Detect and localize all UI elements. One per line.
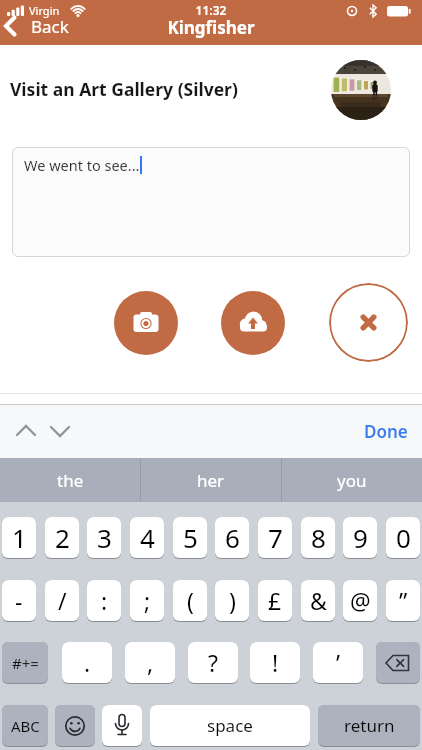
staticText: 4 bbox=[140, 520, 155, 555]
staticText: £ bbox=[268, 585, 282, 616]
button[interactable] bbox=[331, 60, 391, 120]
button[interactable]: ! bbox=[250, 642, 300, 684]
button[interactable] bbox=[221, 291, 285, 355]
button[interactable]: £ bbox=[258, 580, 292, 622]
button[interactable] bbox=[114, 291, 178, 355]
button[interactable]: space bbox=[150, 705, 310, 747]
staticText: 0 bbox=[396, 520, 411, 555]
button[interactable] bbox=[329, 283, 408, 362]
button[interactable]: 8 bbox=[301, 517, 335, 559]
staticText: & bbox=[310, 585, 327, 616]
button[interactable]: We went to see... bbox=[12, 147, 410, 257]
staticText: space bbox=[207, 714, 253, 737]
button[interactable]: 5 bbox=[173, 517, 207, 559]
button[interactable]: ) bbox=[215, 580, 249, 622]
staticText: : bbox=[101, 585, 108, 616]
button[interactable] bbox=[376, 642, 420, 684]
staticText: 1 bbox=[12, 520, 27, 555]
button[interactable]: you bbox=[282, 458, 422, 502]
staticText: ABC bbox=[11, 716, 40, 736]
button[interactable]: & bbox=[301, 580, 335, 622]
button[interactable]: Done bbox=[364, 420, 408, 443]
staticText: 8 bbox=[311, 520, 326, 555]
button[interactable]: ( bbox=[173, 580, 207, 622]
staticText: return bbox=[344, 714, 395, 737]
staticText: Back bbox=[31, 15, 69, 38]
staticText: . bbox=[84, 647, 91, 678]
staticText: / bbox=[58, 585, 67, 616]
button[interactable]: ? bbox=[188, 642, 238, 684]
button[interactable]: return bbox=[318, 705, 420, 747]
button[interactable]: ; bbox=[130, 580, 164, 622]
button[interactable]: . bbox=[62, 642, 112, 684]
staticText: ) bbox=[229, 585, 236, 616]
staticText: ’ bbox=[336, 647, 341, 678]
button[interactable]: 4 bbox=[130, 517, 164, 559]
staticText: We went to see... bbox=[24, 155, 140, 175]
staticText: - bbox=[15, 585, 23, 616]
staticText: the bbox=[57, 469, 84, 492]
button[interactable]: ’ bbox=[313, 642, 363, 684]
button[interactable]: Back bbox=[18, 15, 88, 41]
staticText: 9 bbox=[353, 520, 368, 555]
button[interactable]: : bbox=[87, 580, 121, 622]
staticText: 7 bbox=[268, 520, 283, 555]
staticText: , bbox=[147, 647, 154, 678]
staticText: 11:32 bbox=[0, 2, 422, 18]
button[interactable]: 6 bbox=[215, 517, 249, 559]
button[interactable]: 2 bbox=[45, 517, 79, 559]
staticText: ( bbox=[187, 585, 194, 616]
button[interactable]: the bbox=[0, 458, 140, 502]
button[interactable]: ” bbox=[386, 580, 420, 622]
staticText: 5 bbox=[183, 520, 198, 555]
button[interactable]: #+= bbox=[2, 642, 48, 684]
button[interactable]: , bbox=[125, 642, 175, 684]
button[interactable] bbox=[55, 705, 95, 747]
staticText: Kingfisher bbox=[0, 16, 422, 39]
button[interactable]: 0 bbox=[386, 517, 420, 559]
button[interactable]: 3 bbox=[87, 517, 121, 559]
button[interactable] bbox=[102, 705, 142, 747]
staticText: Visit an Art Gallery (Silver) bbox=[10, 77, 238, 101]
staticText: #+= bbox=[12, 653, 39, 673]
button[interactable]: 7 bbox=[258, 517, 292, 559]
staticText: ! bbox=[272, 647, 279, 678]
staticText: Done bbox=[364, 420, 408, 443]
button[interactable]: ABC bbox=[2, 705, 48, 747]
staticText: 3 bbox=[97, 520, 112, 555]
staticText: 2 bbox=[55, 520, 70, 555]
button[interactable]: 1 bbox=[2, 517, 36, 559]
staticText: ; bbox=[144, 585, 151, 616]
button[interactable]: - bbox=[2, 580, 36, 622]
staticText: ” bbox=[399, 585, 408, 616]
staticText: @ bbox=[350, 585, 371, 616]
staticText: Virgin bbox=[29, 3, 60, 18]
button[interactable]: @ bbox=[343, 580, 377, 622]
button[interactable]: her bbox=[141, 458, 281, 502]
button[interactable]: 9 bbox=[343, 517, 377, 559]
staticText: ? bbox=[208, 647, 218, 678]
button[interactable]: / bbox=[45, 580, 79, 622]
staticText: you bbox=[337, 469, 367, 492]
staticText: 6 bbox=[225, 520, 240, 555]
staticText: her bbox=[197, 469, 225, 492]
